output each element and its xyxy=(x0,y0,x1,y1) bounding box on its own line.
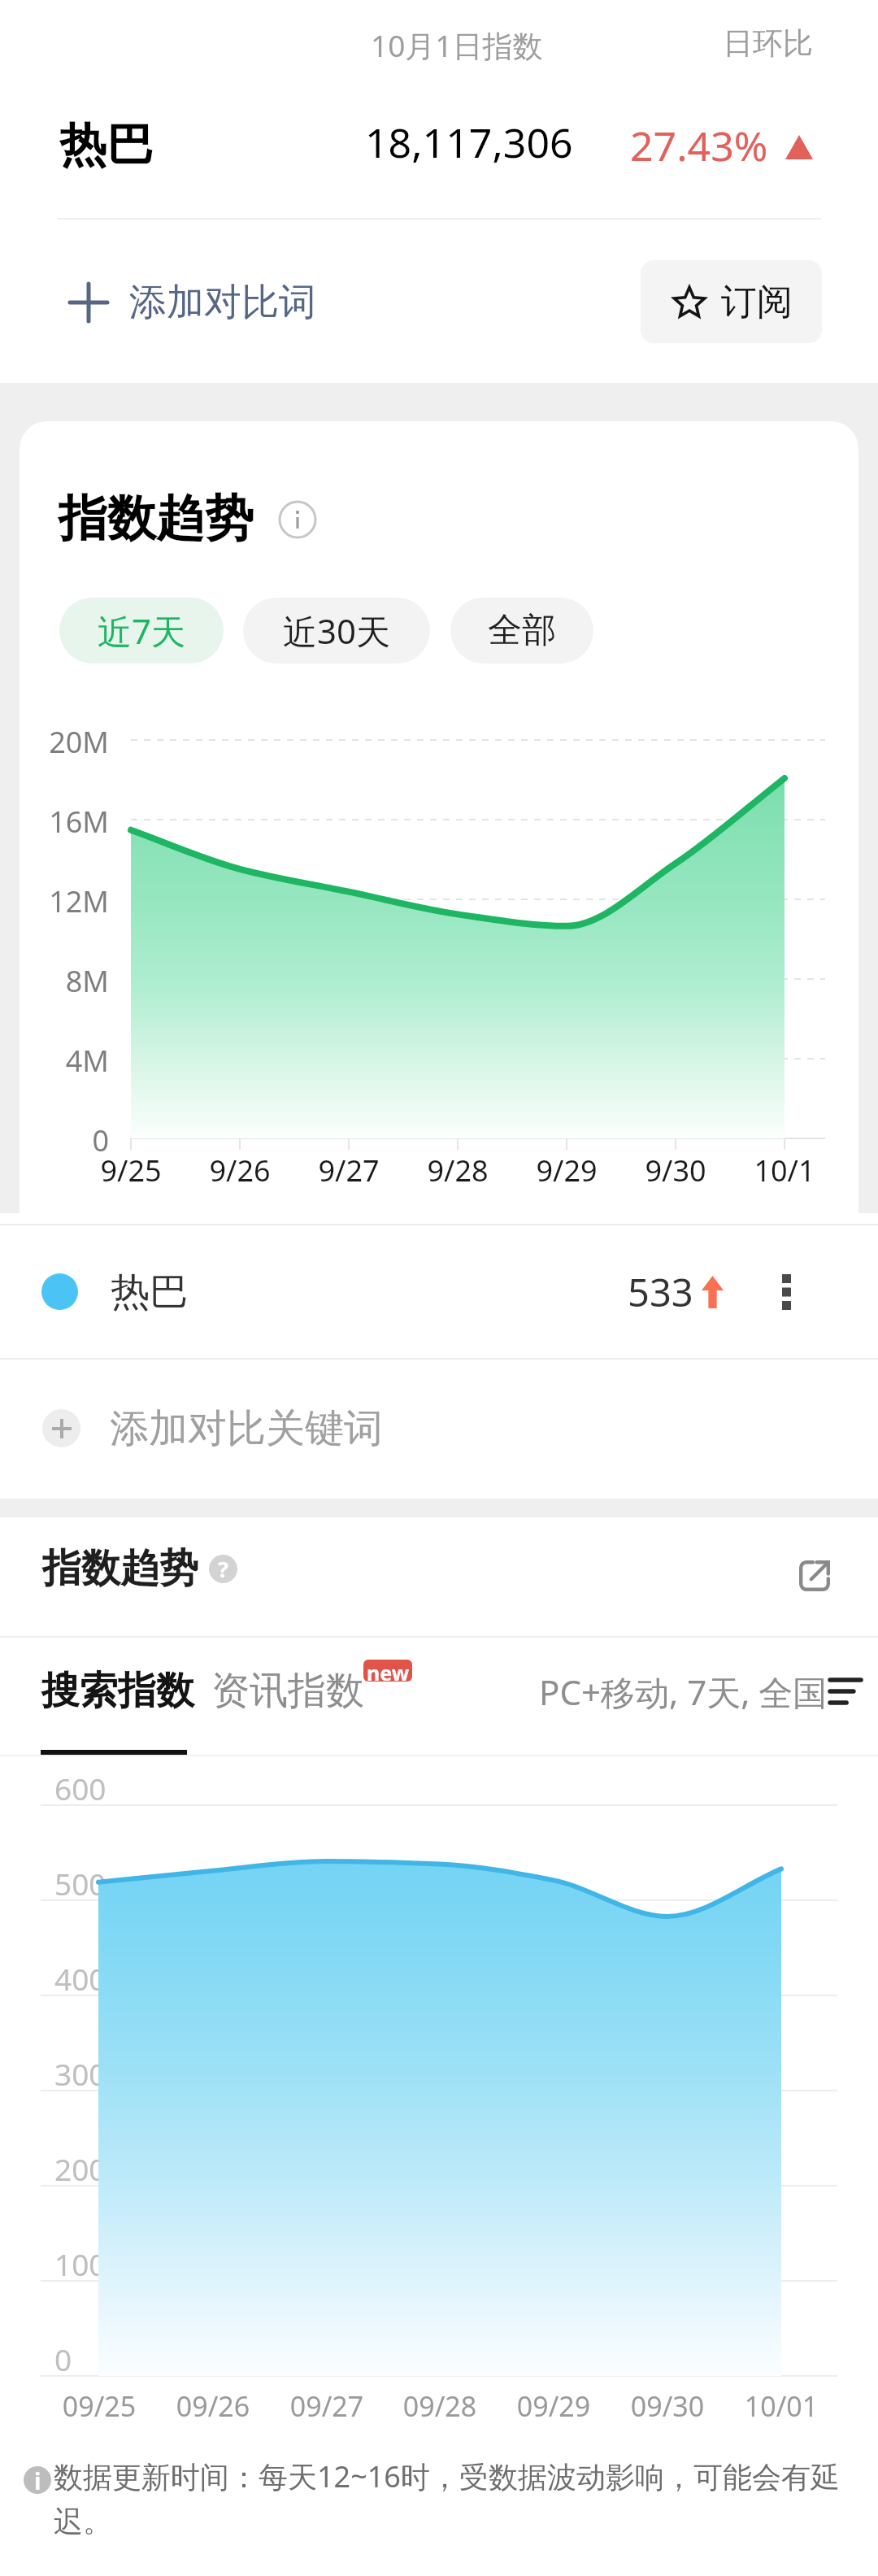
button[interactable]: 搜索指数 xyxy=(22,1652,214,1730)
staticText: 400 xyxy=(54,1958,106,1999)
staticText: 200 xyxy=(54,2148,106,2189)
button[interactable]: 近30天 xyxy=(243,598,430,664)
button[interactable]: Open in new window xyxy=(782,1543,847,1608)
staticText: 8M xyxy=(16,961,109,1001)
button[interactable]: 全部 xyxy=(450,598,593,664)
staticText: 10月1日指数 xyxy=(371,24,543,66)
staticText: 日环比 xyxy=(723,24,813,63)
staticText: 09/30 xyxy=(602,2387,732,2425)
button[interactable]: PC+移动, 7天, 全国 xyxy=(539,1667,861,1716)
staticText: 10/01 xyxy=(716,2387,846,2425)
button[interactable]: 近7天 xyxy=(59,598,224,664)
staticText: 数据更新时间：每天12~16时，受数据波动影响，可能会有延迟。 xyxy=(54,2456,871,2539)
staticText: 9/28 xyxy=(401,1151,515,1190)
staticText: 添加对比词 xyxy=(129,279,316,326)
staticText: 搜索指数 xyxy=(41,1667,194,1715)
button[interactable]: 热巴 xyxy=(0,1225,878,1358)
staticText: 533 xyxy=(628,1266,693,1318)
staticText: i xyxy=(34,2466,41,2493)
staticText: 09/28 xyxy=(375,2387,505,2425)
staticText: 资讯指数 xyxy=(211,1667,364,1715)
staticText: 09/25 xyxy=(34,2387,164,2425)
other: More options xyxy=(782,1274,791,1310)
staticText: 09/26 xyxy=(148,2387,278,2425)
staticText: PC+移动, 7天, 全国 xyxy=(539,1669,828,1715)
button[interactable]: 添加对比关键词 xyxy=(0,1358,878,1499)
staticText: 0 xyxy=(54,2339,72,2379)
staticText: 指数趋势 xyxy=(42,1544,198,1593)
staticText: 热巴 xyxy=(59,115,154,175)
staticText: 500 xyxy=(54,1863,106,1904)
button[interactable]: 订阅 xyxy=(641,260,822,343)
staticText: 20M xyxy=(16,722,109,762)
staticText: 300 xyxy=(54,2053,106,2094)
staticText: 全部 xyxy=(488,609,556,652)
staticText: 9/27 xyxy=(292,1151,406,1190)
staticText: 09/29 xyxy=(489,2387,619,2425)
staticText: 0 xyxy=(16,1120,109,1160)
staticText: 600 xyxy=(54,1768,106,1808)
staticText: 16M xyxy=(16,802,109,842)
staticText: 添加对比关键词 xyxy=(110,1404,383,1453)
staticText: 18,117,306 xyxy=(365,115,573,170)
staticText: 4M xyxy=(16,1041,109,1081)
staticText: 指数趋势 xyxy=(59,488,254,550)
staticText: 近30天 xyxy=(283,607,391,654)
staticText: ? xyxy=(218,1555,228,1582)
staticText: 10/1 xyxy=(728,1151,841,1190)
staticText: 09/27 xyxy=(262,2387,392,2425)
staticText: 27.43% xyxy=(630,118,768,173)
staticText: 订阅 xyxy=(721,280,793,324)
staticText: 9/26 xyxy=(183,1151,297,1190)
button[interactable]: 资讯指数 xyxy=(192,1652,384,1730)
staticText: 100 xyxy=(54,2243,106,2284)
staticText: 热巴 xyxy=(111,1268,189,1316)
staticText: 12M xyxy=(16,881,109,921)
staticText: 9/30 xyxy=(619,1151,732,1190)
staticText: 9/29 xyxy=(510,1151,624,1190)
staticText: new xyxy=(367,1660,410,1681)
button[interactable]: 添加对比词 xyxy=(34,262,316,343)
staticText: 近7天 xyxy=(98,607,186,654)
staticText: 9/25 xyxy=(74,1151,188,1190)
